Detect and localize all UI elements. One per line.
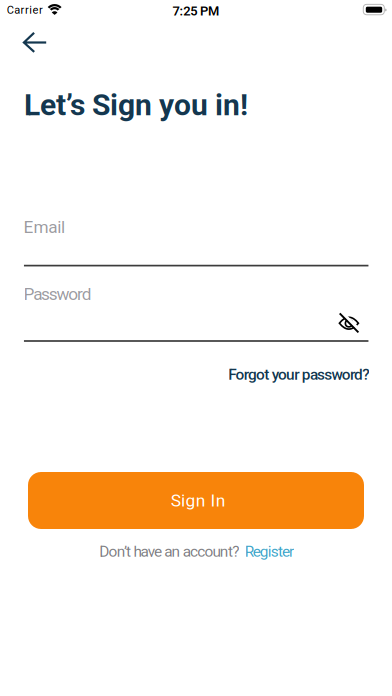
staticText: r	[39, 3, 43, 16]
staticText: Forgot your password?	[228, 365, 369, 383]
staticText: C	[7, 3, 14, 16]
staticText: r	[25, 3, 29, 16]
staticText: a	[14, 3, 20, 16]
staticText: e	[33, 3, 39, 16]
staticText: Don’t have an account?	[99, 542, 239, 560]
staticText: Sign In	[171, 490, 226, 511]
staticText: Email	[23, 217, 65, 237]
staticText: i	[29, 3, 32, 16]
staticText: 7:25 PM	[172, 3, 219, 19]
staticText: r	[20, 3, 24, 16]
staticText: Let’s Sign you in!	[24, 87, 248, 123]
staticText: Password	[23, 284, 92, 304]
staticText: Register	[245, 542, 294, 560]
